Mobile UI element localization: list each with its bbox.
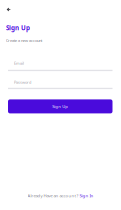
staticText: Sign In (79, 193, 93, 198)
staticText: Password (14, 80, 31, 85)
button[interactable]: Sign In (79, 193, 93, 198)
staticText: Email (14, 61, 24, 66)
staticText: Already Have an account? (27, 193, 79, 198)
staticText: Sign Up (6, 23, 30, 32)
button[interactable]: Back (0, 0, 13, 14)
staticText: Create a new account (6, 38, 42, 43)
button[interactable]: Sign Up (8, 99, 112, 113)
staticText: Sign Up (52, 104, 68, 109)
